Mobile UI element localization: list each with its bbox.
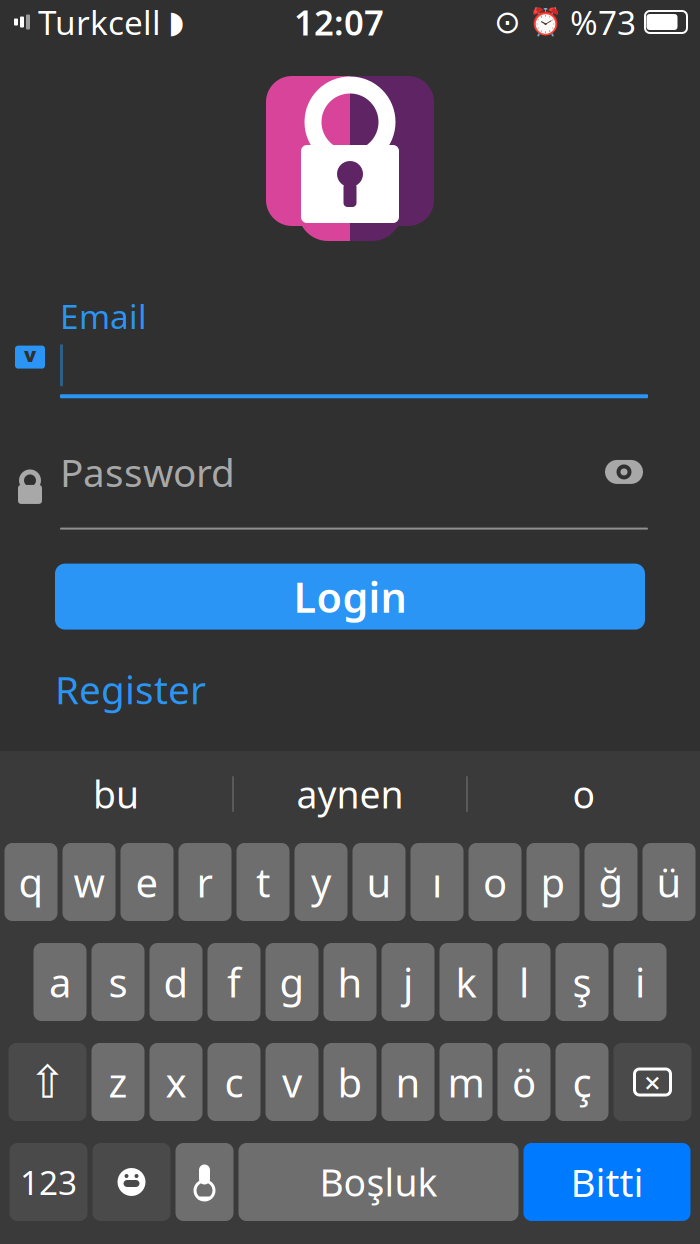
staticText: v: [282, 1055, 302, 1108]
button[interactable]: o: [468, 843, 521, 921]
staticText: Email: [60, 294, 147, 338]
staticText: Password: [60, 446, 235, 498]
staticText: d: [163, 955, 188, 1008]
staticText: Boşluk: [319, 1157, 437, 1207]
staticText: h: [337, 955, 362, 1008]
button[interactable]: u: [352, 843, 405, 921]
staticText: u: [366, 855, 391, 908]
button[interactable]: x: [149, 1043, 202, 1121]
button[interactable]: ç: [555, 1043, 608, 1121]
button[interactable]: p: [526, 843, 579, 921]
staticText: 123: [20, 1160, 77, 1204]
button[interactable]: a: [33, 943, 86, 1021]
button[interactable]: r: [178, 843, 231, 921]
button[interactable]: e: [120, 843, 173, 921]
staticText: m: [447, 1055, 484, 1108]
staticText: k: [455, 955, 476, 1008]
button[interactable]: ş: [555, 943, 608, 1021]
staticText: n: [395, 1055, 420, 1108]
staticText: a: [49, 955, 71, 1008]
button[interactable]: i: [613, 943, 666, 1021]
button[interactable]: g: [265, 943, 318, 1021]
staticText: i: [635, 955, 645, 1008]
staticText: ⇧: [28, 1056, 66, 1108]
staticText: q: [18, 855, 43, 908]
staticText: %73: [570, 0, 636, 44]
button[interactable]: s: [91, 943, 144, 1021]
staticText: ı: [432, 855, 442, 908]
staticText: Turkcell: [38, 0, 161, 44]
button[interactable]: Delete: [613, 1043, 691, 1121]
button[interactable]: b: [323, 1043, 376, 1121]
staticText: g: [279, 955, 304, 1008]
staticText: ü: [656, 855, 681, 908]
button[interactable]: n: [381, 1043, 434, 1121]
staticText: j: [403, 955, 413, 1008]
staticText: c: [224, 1055, 243, 1108]
staticText: ⊙: [494, 4, 521, 40]
staticText: p: [540, 855, 565, 908]
staticText: b: [337, 1055, 362, 1108]
staticText: z: [108, 1055, 127, 1108]
button[interactable]: Show password: [604, 459, 648, 485]
staticText: Login: [293, 569, 406, 624]
staticText: bu: [93, 769, 139, 819]
staticText: v: [24, 341, 36, 367]
staticText: t: [256, 855, 270, 908]
button[interactable]: bu: [0, 763, 232, 825]
button[interactable]: t: [236, 843, 289, 921]
staticText: e: [135, 855, 158, 908]
button[interactable]: v: [265, 1043, 318, 1121]
button[interactable]: m: [439, 1043, 492, 1121]
staticText: Register: [55, 664, 206, 715]
button[interactable]: ö: [497, 1043, 550, 1121]
staticText: ×: [644, 1062, 661, 1101]
staticText: x: [165, 1055, 186, 1108]
staticText: f: [227, 955, 241, 1008]
button[interactable]: d: [149, 943, 202, 1021]
staticText: r: [196, 855, 213, 908]
button[interactable]: ü: [642, 843, 695, 921]
button[interactable]: o: [468, 763, 700, 825]
staticText: Bitti: [570, 1156, 643, 1208]
button[interactable]: j: [381, 943, 434, 1021]
staticText: w: [73, 855, 104, 908]
button[interactable]: Boşluk: [238, 1143, 518, 1221]
staticText: ğ: [598, 855, 623, 908]
staticText: ◗: [168, 5, 184, 39]
button[interactable]: Shift: [8, 1043, 86, 1121]
button[interactable]: ı: [410, 843, 463, 921]
button[interactable]: ğ: [584, 843, 637, 921]
button[interactable]: h: [323, 943, 376, 1021]
button[interactable]: aynen: [234, 763, 466, 825]
staticText: ş: [572, 955, 591, 1008]
button[interactable]: Emoji: [92, 1143, 170, 1221]
staticText: aynen: [296, 769, 403, 819]
staticText: s: [108, 955, 127, 1008]
button[interactable]: 123: [9, 1143, 87, 1221]
button[interactable]: Register: [55, 658, 206, 721]
button[interactable]: k: [439, 943, 492, 1021]
button[interactable]: f: [207, 943, 260, 1021]
staticText: o: [572, 769, 595, 819]
staticText: ö: [512, 1055, 536, 1108]
button[interactable]: l: [497, 943, 550, 1021]
staticText: o: [483, 855, 507, 908]
button[interactable]: z: [91, 1043, 144, 1121]
button[interactable]: w: [62, 843, 115, 921]
button[interactable]: q: [4, 843, 57, 921]
button[interactable]: c: [207, 1043, 260, 1121]
button[interactable]: Dictation: [175, 1143, 233, 1221]
staticText: l: [519, 955, 529, 1008]
staticText: 12:07: [294, 0, 384, 45]
button[interactable]: Bitti: [523, 1143, 690, 1221]
staticText: ç: [572, 1055, 591, 1108]
button[interactable]: y: [294, 843, 347, 921]
button[interactable]: Login: [55, 564, 645, 630]
staticText: y: [311, 855, 331, 908]
staticText: ⏰: [529, 7, 562, 37]
